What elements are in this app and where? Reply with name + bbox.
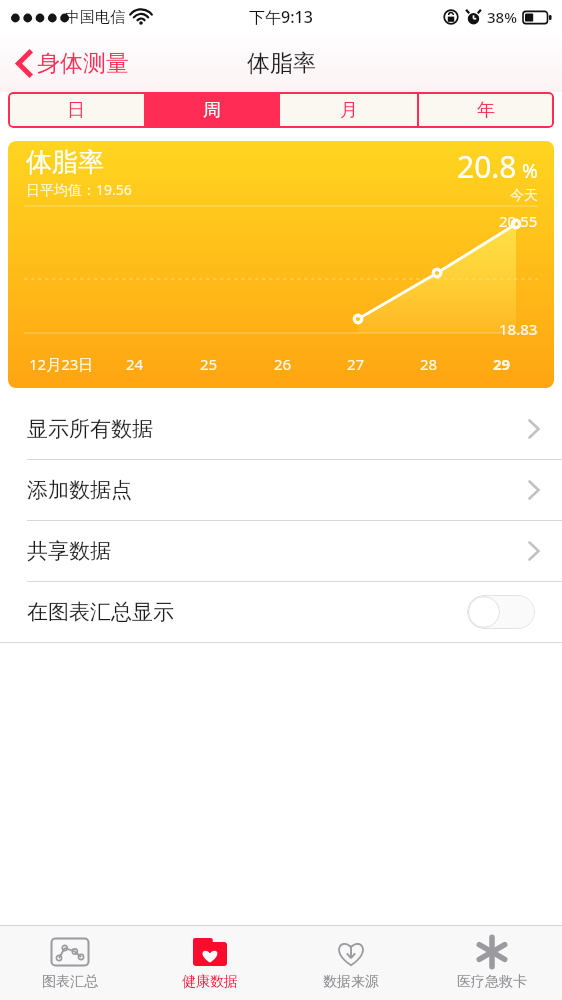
staticText: 日 <box>67 99 85 122</box>
staticText: 18.83 <box>499 319 538 339</box>
staticText: 添加数据点 <box>27 477 132 503</box>
staticText: 健康数据 <box>182 973 238 991</box>
staticText: 月 <box>340 99 358 122</box>
button[interactable]: 图表汇总 <box>0 926 140 1000</box>
button[interactable]: 周 <box>144 92 280 128</box>
staticText: 年 <box>477 99 495 122</box>
staticText: 25 <box>200 354 218 374</box>
staticText: 身体测量 <box>37 49 129 78</box>
button[interactable]: 月 <box>280 92 417 128</box>
button[interactable]: 日 <box>8 92 144 128</box>
staticText: 20.55 <box>499 211 538 231</box>
staticText: % <box>517 158 538 184</box>
staticText: 日平均值：19.56 <box>26 180 132 199</box>
button[interactable]: 添加数据点 <box>0 460 562 520</box>
staticText: 12月23日 <box>29 354 94 374</box>
button[interactable]: 年 <box>417 92 554 128</box>
staticText: 中国电信 <box>65 8 125 27</box>
button[interactable]: 体脂率 <box>8 141 554 388</box>
button[interactable]: 共享数据 <box>0 521 562 581</box>
staticText: 下午9:13 <box>249 6 313 28</box>
staticText: 医疗急救卡 <box>457 973 527 991</box>
staticText: 20.8 <box>457 146 517 187</box>
staticText: 38% <box>487 7 517 27</box>
staticText: 图表汇总 <box>42 973 98 991</box>
staticText: 26 <box>274 354 292 374</box>
button[interactable]: 医疗急救卡 <box>421 926 562 1000</box>
staticText: 在图表汇总显示 <box>27 599 174 625</box>
staticText: 24 <box>126 354 144 374</box>
staticText: 今天 <box>510 187 538 205</box>
button[interactable]: 数据来源 <box>280 926 421 1000</box>
button[interactable]: 健康数据 <box>140 926 280 1000</box>
staticText: 27 <box>347 354 365 374</box>
staticText: 体脂率 <box>247 49 316 78</box>
staticText: 显示所有数据 <box>27 416 153 442</box>
staticText: 29 <box>493 354 511 374</box>
button[interactable]: 身体测量 <box>10 42 134 85</box>
staticText: 共享数据 <box>27 538 111 564</box>
button[interactable]: 在图表汇总显示 <box>0 582 562 642</box>
staticText: 周 <box>203 99 221 122</box>
button[interactable]: 显示所有数据 <box>0 399 562 459</box>
staticText: 28 <box>420 354 438 374</box>
staticText: 体脂率 <box>26 146 104 179</box>
staticText: 数据来源 <box>323 973 379 991</box>
